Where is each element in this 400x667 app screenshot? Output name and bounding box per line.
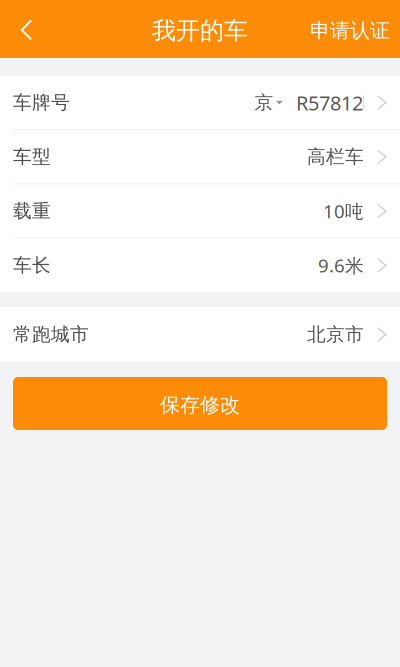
staticText: 车牌号 bbox=[13, 91, 70, 114]
staticText: 我开的车 bbox=[152, 16, 248, 46]
staticText: 车型 bbox=[13, 145, 51, 169]
staticText: 车长 bbox=[13, 254, 51, 277]
button[interactable]: 车长 bbox=[0, 239, 400, 292]
staticText: 京 bbox=[255, 91, 274, 114]
staticText: 保存修改 bbox=[160, 392, 240, 418]
button[interactable]: 车牌号 bbox=[0, 76, 400, 129]
staticText: 10吨 bbox=[323, 198, 364, 224]
button[interactable]: 载重 bbox=[0, 184, 400, 238]
button[interactable]: 申请认证 bbox=[299, 0, 400, 58]
button[interactable]: 车型 bbox=[0, 130, 400, 183]
staticText: R57812 bbox=[296, 89, 363, 116]
button[interactable]: Back bbox=[0, 0, 44, 58]
staticText: 申请认证 bbox=[310, 18, 390, 43]
staticText: 常跑城市 bbox=[13, 323, 89, 346]
button[interactable]: 保存修改 bbox=[13, 377, 387, 430]
staticText: 9.6米 bbox=[318, 253, 364, 278]
staticText: 北京市 bbox=[307, 323, 364, 346]
button[interactable]: 常跑城市 bbox=[0, 307, 400, 362]
staticText: 高栏车 bbox=[307, 145, 364, 169]
staticText: 载重 bbox=[13, 199, 51, 223]
